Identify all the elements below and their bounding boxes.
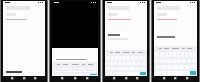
button[interactable]: Home	[23, 77, 26, 80]
button[interactable]: Send	[190, 71, 196, 75]
button[interactable]: Back	[61, 77, 64, 80]
button[interactable]: Send	[90, 74, 97, 75]
button[interactable]: Recents	[186, 77, 189, 80]
button[interactable]: Home	[174, 77, 177, 80]
button[interactable]: Recents	[136, 77, 139, 80]
button[interactable]: Home	[125, 77, 128, 80]
button[interactable]: Recents	[34, 77, 37, 80]
button[interactable]: Home	[74, 77, 77, 80]
button[interactable]: Recents	[86, 77, 89, 80]
button[interactable]: Send	[140, 72, 146, 75]
button[interactable]: Back	[163, 77, 166, 80]
button[interactable]: Back	[11, 77, 14, 80]
button[interactable]: Back	[113, 77, 116, 80]
